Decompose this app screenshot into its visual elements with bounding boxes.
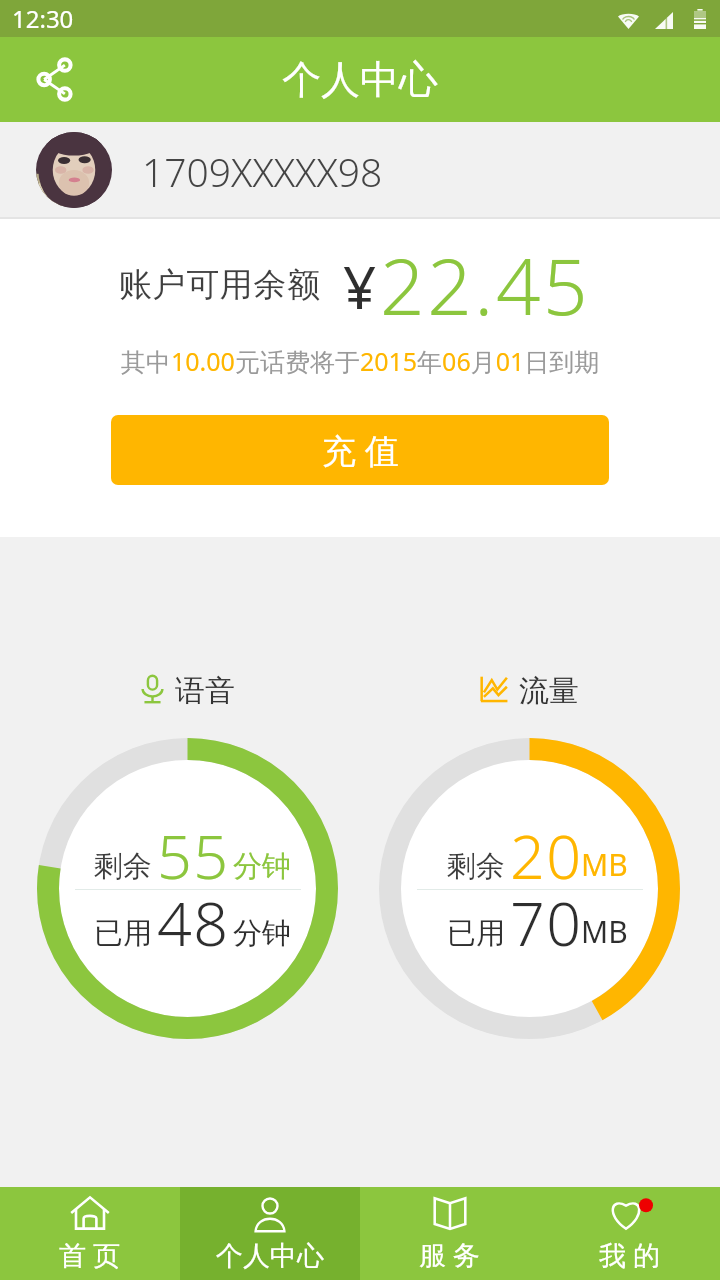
staticText: 个人中心	[282, 55, 438, 104]
staticText: 账户可用余额	[119, 264, 321, 306]
staticText: MB	[581, 844, 628, 885]
staticText: 已用	[94, 915, 152, 952]
button[interactable]: 服 务	[360, 1187, 540, 1280]
staticText: 充 值	[322, 427, 399, 473]
staticText: MB	[581, 911, 628, 952]
staticText: ¥	[343, 247, 377, 326]
staticText: 个人中心	[216, 1239, 324, 1273]
staticText: 语音	[175, 672, 235, 706]
staticText: 1709XXXXX98	[142, 145, 383, 198]
button[interactable]: 1709XXXXX98	[0, 122, 720, 217]
button[interactable]: 充 值	[111, 415, 609, 485]
staticText: 已用	[447, 915, 505, 952]
staticText: 剩余	[94, 848, 152, 885]
button[interactable]: Share	[18, 43, 91, 116]
staticText: 我 的	[599, 1236, 661, 1273]
staticText: 流量	[519, 672, 579, 706]
staticText: 服 务	[419, 1236, 481, 1273]
staticText: 48	[157, 881, 230, 964]
staticText: 分钟	[233, 915, 291, 952]
staticText: 20	[510, 814, 583, 897]
staticText: 12:30	[12, 2, 74, 35]
button[interactable]: 个人中心	[180, 1187, 360, 1280]
staticText: 其中10.00元话费将于2015年06月01日到期	[121, 344, 600, 378]
staticText: 70	[510, 881, 583, 964]
staticText: 分钟	[233, 848, 291, 885]
staticText: 首 页	[59, 1236, 121, 1273]
button[interactable]: 首 页	[0, 1187, 180, 1280]
button[interactable]: 我 的	[540, 1187, 720, 1280]
staticText: 剩余	[447, 848, 505, 885]
staticText: 22.45	[380, 232, 591, 338]
staticText: 55	[157, 814, 230, 897]
